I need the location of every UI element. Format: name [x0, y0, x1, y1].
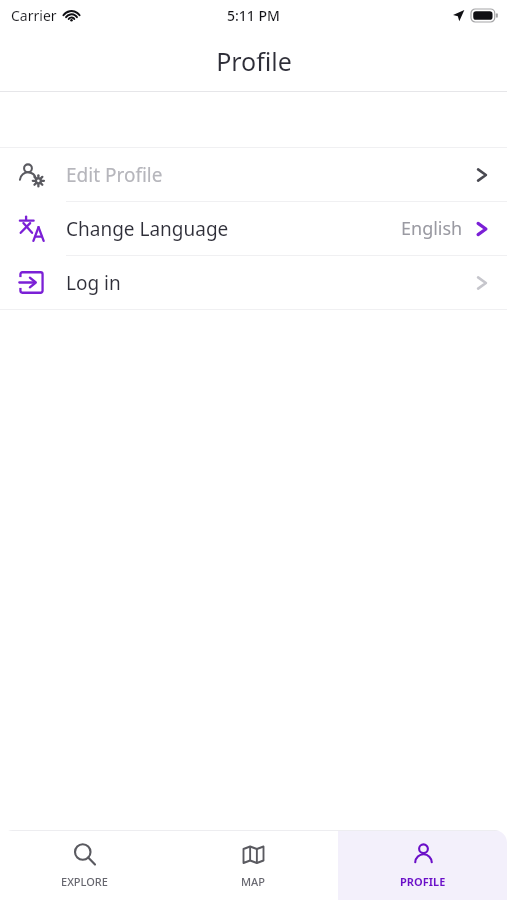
staticText: EXPLORE	[61, 874, 108, 889]
button[interactable]: EXPLORE	[0, 830, 169, 900]
button[interactable]: MAP	[169, 830, 338, 900]
other: Log in	[18, 269, 45, 296]
staticText: Carrier	[11, 6, 57, 25]
staticText: Change Language	[66, 216, 229, 242]
button[interactable]: Log in	[0, 256, 507, 309]
staticText: Edit Profile	[66, 162, 163, 188]
staticText: Log in	[66, 270, 121, 296]
button[interactable]: Change Language	[0, 202, 507, 255]
staticText: 5:11 PM	[227, 6, 280, 25]
staticText: MAP	[241, 874, 266, 889]
staticText: PROFILE	[400, 874, 446, 889]
staticText: Profile	[216, 44, 292, 78]
staticText: English	[401, 216, 463, 241]
button[interactable]: Edit Profile	[0, 148, 507, 201]
button[interactable]: PROFILE	[338, 830, 507, 900]
other: Edit Profile	[18, 161, 45, 188]
other: Change Language	[18, 215, 45, 242]
